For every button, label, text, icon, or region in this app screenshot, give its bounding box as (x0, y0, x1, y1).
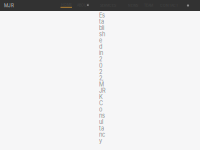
staticText: NEWS (128, 3, 138, 8)
staticText: Es ta bli sh e d in 2 0 2 2, M JR K C o … (99, 12, 106, 144)
button[interactable]: SERVICES (0, 0, 18, 11)
button[interactable]: MJR (0, 0, 12, 11)
button[interactable]: Search (0, 0, 6, 11)
button[interactable]: NEWS (0, 0, 10, 11)
staticText: HOME (61, 3, 72, 7)
button[interactable]: HOME (0, 0, 12, 11)
staticText: ABOUT (77, 3, 89, 7)
button[interactable]: TEAM (0, 0, 9, 11)
button[interactable]: ABOUT (0, 0, 13, 11)
staticText: MJR (4, 3, 14, 8)
button[interactable]: CONTACT (0, 0, 9, 11)
